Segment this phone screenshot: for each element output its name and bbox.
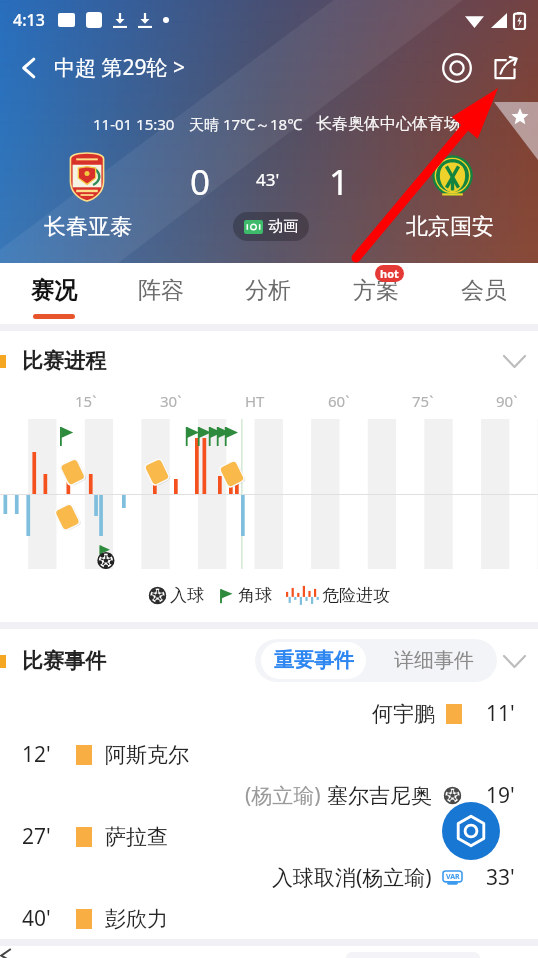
staticText: 30` xyxy=(160,391,182,411)
staticText: 阵容 xyxy=(138,276,184,305)
staticText: 入球取消(杨立瑜) xyxy=(272,863,432,892)
staticText: 90` xyxy=(496,391,518,411)
button[interactable]: 动画 xyxy=(233,212,309,241)
button[interactable]: Collapse xyxy=(498,349,531,373)
button[interactable]: Live broadcast xyxy=(436,47,478,89)
staticText: 33' xyxy=(486,863,515,892)
staticText: HT xyxy=(245,391,265,411)
staticText: 北京国安 xyxy=(406,213,494,241)
button[interactable]: 分析 xyxy=(214,263,322,324)
button[interactable]: 中超 第29轮 > xyxy=(54,47,185,88)
staticText: 0 xyxy=(190,158,211,206)
staticText: 11-01 15:30 xyxy=(93,114,175,134)
staticText: 15` xyxy=(75,391,97,411)
button[interactable]: 40' xyxy=(0,898,538,939)
staticText: 动画 xyxy=(268,217,298,236)
staticText: 11' xyxy=(486,699,515,728)
staticText: 长春亚泰 xyxy=(44,213,132,241)
button[interactable]: 何宇鹏 xyxy=(0,693,538,734)
staticText: 4:13 xyxy=(13,9,45,31)
staticText: 43' xyxy=(256,168,280,191)
staticText: 详细事件 xyxy=(394,648,474,673)
staticText: VAR xyxy=(446,872,460,882)
button[interactable]: (杨立瑜) xyxy=(0,775,538,816)
staticText: 40' xyxy=(22,904,51,933)
staticText: 75` xyxy=(412,391,434,411)
staticText: 1 xyxy=(329,158,350,206)
staticText: 比赛进程 xyxy=(22,348,106,374)
staticText: 入球 xyxy=(170,585,204,606)
staticText: 长春奥体中心体育场 xyxy=(316,114,460,134)
staticText: 萨拉查 xyxy=(105,824,168,850)
button[interactable]: 会员 xyxy=(430,263,538,324)
button[interactable]: 27' xyxy=(0,816,538,857)
staticText: 何宇鹏 xyxy=(372,701,435,727)
staticText: hot xyxy=(380,266,399,281)
staticText: 塞尔吉尼奥 xyxy=(327,783,432,809)
staticText: 角球 xyxy=(238,585,272,606)
staticText: 27' xyxy=(22,822,51,851)
staticText: 会员 xyxy=(461,276,507,305)
staticText: 赛况 xyxy=(31,276,77,305)
button[interactable]: Favourite xyxy=(494,102,538,160)
staticText: (杨立瑜) xyxy=(245,781,327,810)
button[interactable]: 赛况 xyxy=(0,263,107,324)
button[interactable]: Share xyxy=(484,47,526,89)
staticText: 彭欣力 xyxy=(105,906,168,932)
button[interactable]: Live match xyxy=(442,802,500,860)
staticText: 分析 xyxy=(245,276,291,305)
staticText: 重要事件 xyxy=(274,648,354,673)
staticText: 方案 xyxy=(353,276,399,305)
button[interactable]: 重要事件 xyxy=(261,642,366,679)
staticText: 比赛事件 xyxy=(22,648,106,674)
button[interactable]: 详细事件 xyxy=(377,639,491,682)
staticText: 19' xyxy=(486,781,515,810)
button[interactable]: 入球取消(杨立瑜) xyxy=(0,857,538,898)
button[interactable]: 比赛进程 xyxy=(0,331,538,391)
staticText: 中超 第29轮 > xyxy=(54,53,185,82)
button[interactable]: 12' xyxy=(0,734,538,775)
staticText: 危险进攻 xyxy=(322,585,390,606)
staticText: 天晴 17℃～18℃ xyxy=(189,114,303,134)
button[interactable]: Collapse xyxy=(498,649,531,673)
staticText: 12' xyxy=(22,740,51,769)
staticText: 阿斯克尔 xyxy=(105,742,189,768)
button[interactable]: Back xyxy=(10,49,48,87)
button[interactable]: 方案 xyxy=(322,263,430,324)
staticText: 60` xyxy=(328,391,350,411)
button[interactable]: 阵容 xyxy=(107,263,214,324)
